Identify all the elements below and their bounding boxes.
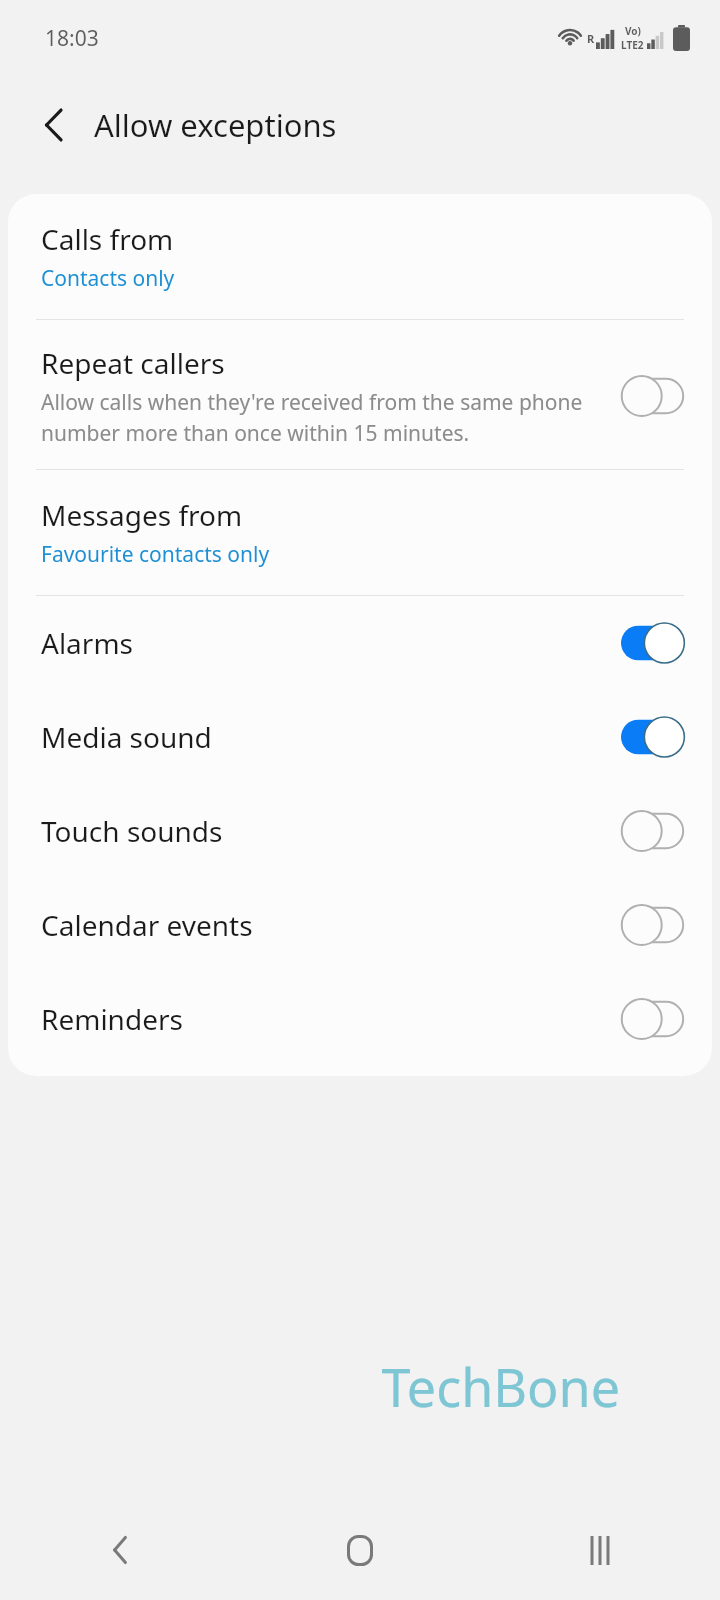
button[interactable]: Calendar events xyxy=(8,878,712,972)
button[interactable]: Recent apps xyxy=(480,1500,720,1600)
button[interactable]: Messages from xyxy=(8,470,712,595)
staticText: Allow calls when they're received from t… xyxy=(41,388,600,447)
button[interactable]: Media sound xyxy=(614,707,700,767)
button[interactable]: Touch sounds xyxy=(8,784,712,878)
button[interactable]: Home xyxy=(240,1500,480,1600)
staticText: Favourite contacts only xyxy=(41,540,270,569)
button[interactable]: Media sound xyxy=(8,690,712,784)
button[interactable]: Reminders xyxy=(614,989,700,1049)
staticText: R xyxy=(587,31,595,46)
staticText: Alarms xyxy=(41,624,614,662)
button[interactable]: Back xyxy=(0,1500,240,1600)
button[interactable]: Calendar events xyxy=(614,895,700,955)
staticText: Repeat callers xyxy=(41,344,225,382)
staticText: TechBone xyxy=(0,1351,620,1422)
button[interactable]: Back xyxy=(26,97,82,153)
staticText: Reminders xyxy=(41,1000,614,1038)
staticText: LTE2 xyxy=(621,38,644,52)
button[interactable]: Calls from xyxy=(8,194,712,319)
button[interactable]: Repeat callers xyxy=(8,320,712,469)
staticText: Calls from xyxy=(41,220,174,258)
staticText: Contacts only xyxy=(41,264,175,293)
staticText: Allow exceptions xyxy=(94,104,337,146)
button[interactable]: Alarms xyxy=(614,613,700,673)
staticText: Touch sounds xyxy=(41,812,614,850)
staticText: Vo) xyxy=(625,24,641,38)
staticText: Media sound xyxy=(41,718,614,756)
staticText: Calendar events xyxy=(41,906,614,944)
button[interactable]: Repeat callers xyxy=(614,366,700,426)
button[interactable]: Touch sounds xyxy=(614,801,700,861)
staticText: Messages from xyxy=(41,496,243,534)
button[interactable]: Alarms xyxy=(8,596,712,690)
button[interactable]: Reminders xyxy=(8,972,712,1066)
staticText: 18:03 xyxy=(45,24,99,53)
